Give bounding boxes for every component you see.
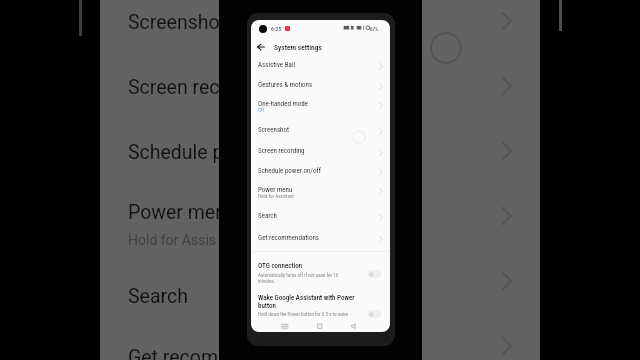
- staticText: Search: [128, 285, 188, 308]
- button[interactable]: Wake Google Assistant with Power: [251, 293, 390, 319]
- staticText: Search: [258, 212, 277, 220]
- staticText: Screenshot: [258, 126, 290, 134]
- button[interactable]: Screen recording: [251, 144, 390, 164]
- staticText: Power menu: [258, 186, 293, 194]
- button[interactable]: Screenshot: [251, 123, 390, 143]
- staticText: Hold for Assistant: [258, 193, 294, 199]
- staticText: Power men: [128, 201, 226, 224]
- button[interactable]: Get recommendations: [251, 231, 390, 251]
- staticText: OTG connection: [258, 262, 303, 270]
- staticText: Schedule p: [128, 141, 224, 164]
- button[interactable]: Search: [251, 209, 390, 229]
- staticText: Screen recording: [258, 147, 305, 155]
- staticText: Automatically turns off if not used for …: [258, 272, 339, 278]
- button[interactable]: One-handed mode: [251, 97, 390, 122]
- staticText: Hold for Assis: [128, 232, 217, 248]
- staticText: Get recom: [128, 346, 219, 360]
- staticText: Screenshot: [128, 11, 226, 34]
- button[interactable]: Toggle: [368, 310, 381, 318]
- button[interactable]: Back: [255, 41, 267, 53]
- staticText: Gestures & motions: [258, 81, 313, 89]
- staticText: System settings: [274, 43, 322, 52]
- staticText: Wake Google Assistant with Power: [258, 294, 355, 302]
- button[interactable]: Toggle: [368, 270, 381, 278]
- staticText: 6:25: [271, 25, 282, 32]
- staticText: button: [258, 302, 276, 310]
- staticText: One-handed mode: [258, 100, 309, 108]
- staticText: Hold down the Power button for 0.5 s to …: [258, 311, 348, 317]
- button[interactable]: OTG connection: [251, 261, 390, 289]
- button[interactable]: Gestures & motions: [251, 78, 390, 98]
- staticText: Schedule power on/off: [258, 167, 321, 175]
- staticText: Get recommendations: [258, 234, 320, 242]
- button[interactable]: Power menu: [251, 183, 390, 208]
- staticText: Assistive Ball: [258, 61, 296, 69]
- staticText: Off: [258, 107, 265, 113]
- staticText: Screen rec: [128, 76, 220, 99]
- button[interactable]: Assistive Ball: [251, 58, 390, 78]
- staticText: minutes.: [258, 278, 276, 284]
- button[interactable]: Schedule power on/off: [251, 164, 390, 184]
- staticText: 67%: [370, 26, 379, 32]
